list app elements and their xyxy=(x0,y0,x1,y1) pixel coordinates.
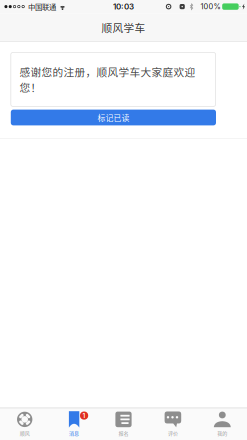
button[interactable]: 我的 xyxy=(198,408,247,440)
staticText: 报名 xyxy=(118,429,128,437)
button[interactable]: 顺风 xyxy=(0,408,49,440)
staticText: 标记已读 xyxy=(97,112,129,123)
staticText: 我的 xyxy=(217,429,227,437)
button[interactable]: 1 xyxy=(49,408,99,440)
staticText: 顺风 xyxy=(20,429,30,437)
staticText: 10:03 xyxy=(113,2,134,11)
staticText: 顺风学车 xyxy=(101,20,145,35)
button[interactable]: 评价 xyxy=(148,408,198,440)
staticText: 中国联通 xyxy=(28,1,56,12)
staticText: 100% xyxy=(201,2,221,11)
button[interactable]: 报名 xyxy=(99,408,148,440)
staticText: 评价 xyxy=(168,429,178,437)
staticText: 感谢您的注册，顺风学车大家庭欢迎您！ xyxy=(20,64,196,95)
staticText: 1 xyxy=(83,412,86,419)
button[interactable]: 标记已读 xyxy=(11,110,216,125)
staticText: 消息 xyxy=(69,429,79,437)
